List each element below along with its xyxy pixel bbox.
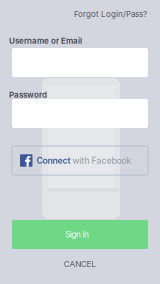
button[interactable]: Forgot Login/Pass? [74,8,148,20]
button[interactable]: Connect [12,146,148,175]
staticText: Sign In [65,229,89,239]
staticText: Password [9,90,47,100]
staticText: Connect [36,155,70,166]
button[interactable]: Sign In [12,220,148,249]
staticText: with Facebook [72,155,131,166]
staticText: Forgot Login/Pass? [74,9,147,19]
staticText: CANCEL [64,259,96,269]
button[interactable]: CANCEL [12,255,148,273]
staticText: Username or Email [9,36,82,46]
